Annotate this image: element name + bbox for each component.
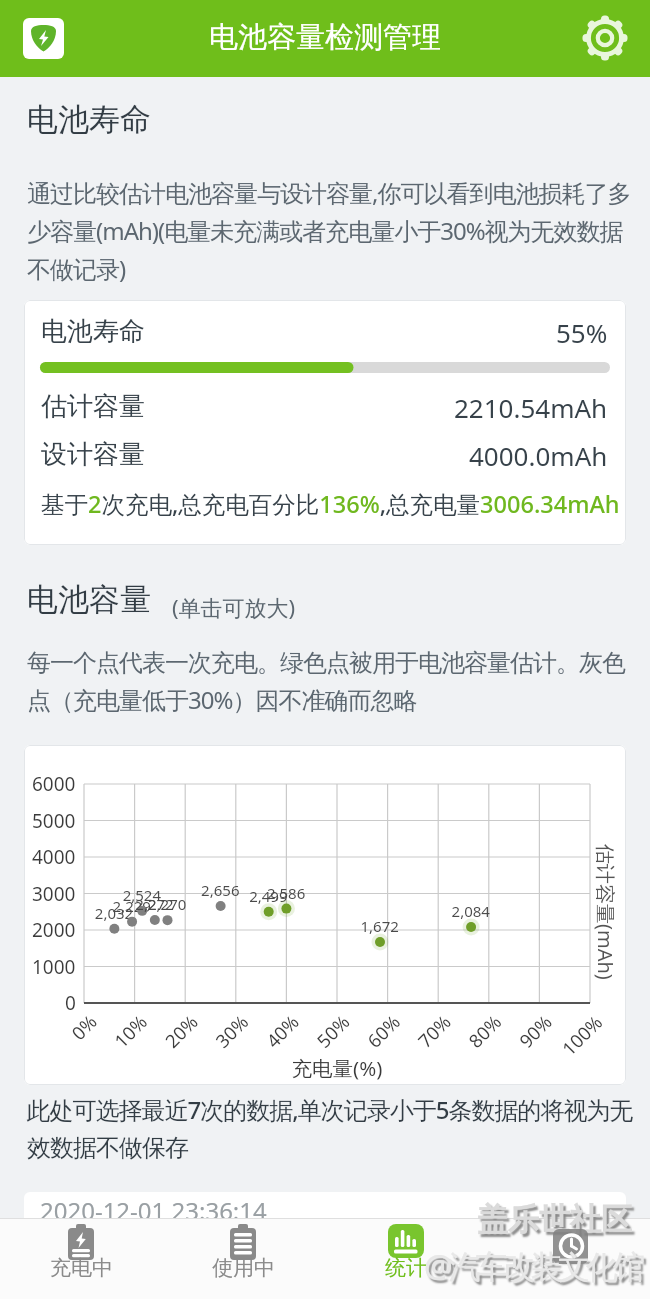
staticText: (单击可放大) <box>172 592 296 622</box>
staticText: 估计容量 <box>41 390 145 423</box>
button[interactable]: 统计 <box>324 1218 487 1299</box>
staticText: 基于2次充电,总充电百分比136%,总充电量3006.34mAh <box>41 488 620 520</box>
staticText: 充电中 <box>50 1255 113 1281</box>
staticText: 通过比较估计电池容量与设计容量,你可以看到电池损耗了多少容量(mAh)(电量未充… <box>27 176 633 285</box>
staticText: 每一个点代表一次充电。绿色点被用于电池容量估计。灰色点（充电量低于30%）因不准… <box>27 648 633 716</box>
button[interactable] <box>24 745 626 1085</box>
button[interactable]: 2020-12-01 23:36:14 <box>24 1192 626 1218</box>
staticText: 设计容量 <box>41 438 145 471</box>
staticText: 2020-12-01 23:36:14 <box>40 1194 267 1218</box>
staticText: 2210.54mAh <box>454 390 608 425</box>
staticText: 电池寿命 <box>27 100 151 139</box>
staticText: 此处可选择最近7次的数据,单次记录小于5条数据的将视为无效数据不做保存 <box>27 1093 633 1163</box>
staticText: @汽车改装文化馆 <box>424 1244 641 1288</box>
button[interactable] <box>581 14 629 62</box>
button[interactable]: 使用中 <box>162 1218 324 1299</box>
button[interactable]: 充电中 <box>0 1218 162 1299</box>
staticText: 55% <box>556 315 608 350</box>
staticText: 电池容量 <box>27 580 151 619</box>
button[interactable]: 电池寿命 <box>24 300 626 545</box>
staticText: 盖乐世社区 <box>477 1200 632 1239</box>
staticText: 4000.0mAh <box>469 438 608 473</box>
staticText: 统计 <box>385 1255 427 1281</box>
staticText: 使用中 <box>212 1255 275 1281</box>
staticText: 电池寿命 <box>41 315 145 348</box>
button[interactable] <box>487 1218 650 1299</box>
staticText: 电池容量检测管理 <box>209 19 441 56</box>
